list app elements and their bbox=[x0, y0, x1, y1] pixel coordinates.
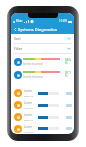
staticText: dolor sit bbox=[24, 118, 34, 121]
staticText: Lorem ipsum bbox=[24, 89, 37, 93]
staticText: 11:09 bbox=[59, 19, 67, 23]
staticText: Sort bbox=[14, 36, 21, 41]
button[interactable]: Sed do eiusmod bbox=[14, 55, 72, 68]
button[interactable]: Open details bbox=[66, 127, 72, 130]
staticText: Lorem ipsum bbox=[24, 125, 37, 129]
button[interactable]: Open details bbox=[66, 116, 72, 119]
staticText: 97.1 % bbox=[65, 71, 71, 78]
button[interactable]: Navigate up bbox=[13, 27, 18, 32]
button[interactable]: Sort bbox=[11, 34, 74, 44]
button[interactable]: Lorem ipsum bbox=[14, 99, 72, 111]
staticText: Sed do eiusmod bbox=[23, 75, 43, 79]
button[interactable]: Lorem ipsum bbox=[14, 87, 72, 99]
button[interactable]: Open details bbox=[66, 92, 72, 95]
staticText: 98.5 % bbox=[65, 58, 71, 65]
staticText: Lorem ipsum bbox=[24, 101, 37, 105]
staticText: dolor sit bbox=[24, 130, 34, 133]
button[interactable]: Lorem ipsum bbox=[14, 123, 72, 134]
staticText: Systems Diagnostics bbox=[18, 27, 58, 32]
button[interactable]: Open details bbox=[66, 104, 72, 107]
staticText: dolor sit bbox=[24, 94, 34, 97]
staticText: dolor sit bbox=[24, 106, 34, 109]
button[interactable]: Lorem ipsum bbox=[14, 111, 72, 123]
button[interactable]: Filter bbox=[11, 44, 74, 54]
staticText: Mon bbox=[16, 19, 23, 23]
staticText: Filter bbox=[14, 46, 23, 51]
button[interactable]: Sed do eiusmod bbox=[14, 68, 72, 81]
staticText: Lorem ipsum bbox=[24, 113, 37, 117]
staticText: Sed do eiusmod bbox=[23, 62, 43, 66]
